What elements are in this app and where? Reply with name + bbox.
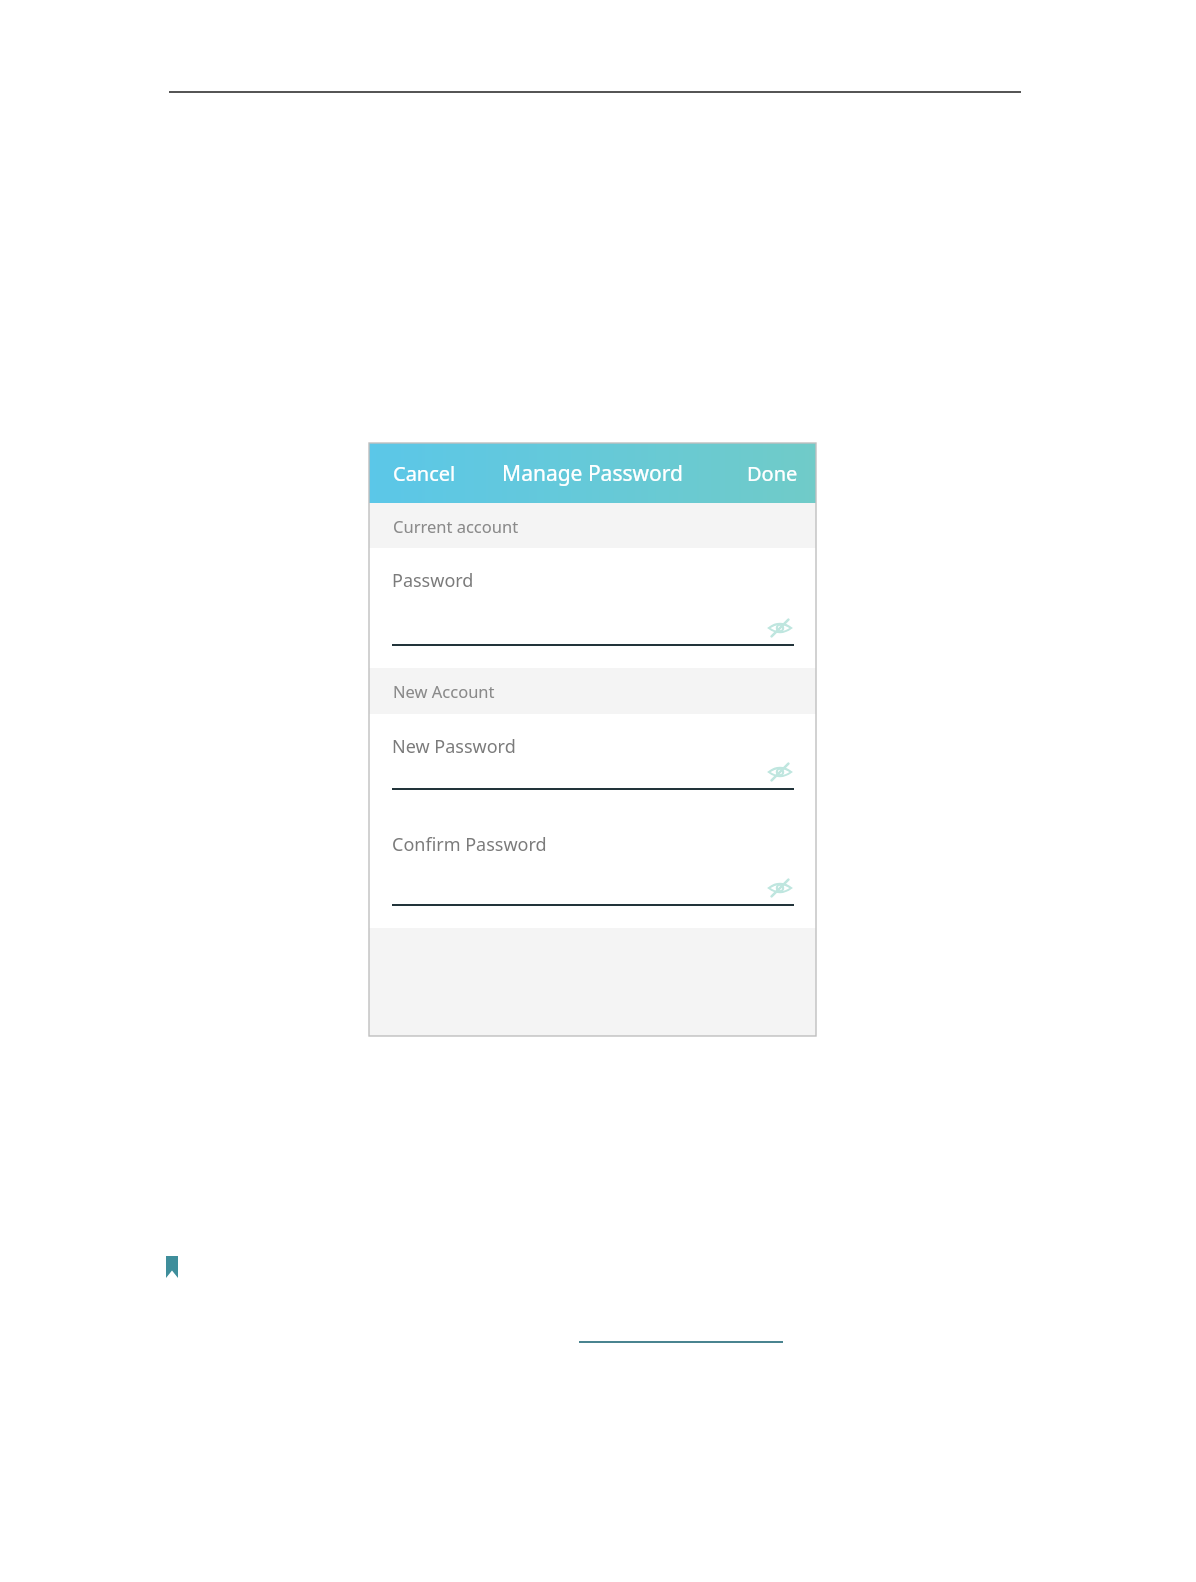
staticText: Done bbox=[747, 460, 798, 487]
button[interactable]: Show password bbox=[766, 758, 794, 786]
button[interactable]: Done bbox=[731, 452, 816, 495]
staticText: New Account bbox=[393, 680, 495, 702]
button[interactable]: Bookmark bbox=[166, 1256, 178, 1278]
button[interactable]: Cancel bbox=[369, 452, 472, 495]
staticText: Cancel bbox=[393, 460, 456, 487]
staticText: Current account bbox=[393, 515, 519, 537]
staticText: Confirm Password bbox=[392, 832, 547, 857]
button[interactable]: Show password bbox=[766, 874, 794, 902]
staticText: Password bbox=[392, 568, 474, 593]
button[interactable]: Show password bbox=[766, 614, 794, 642]
staticText: New Password bbox=[392, 734, 516, 759]
staticText: Manage Password bbox=[502, 459, 683, 488]
